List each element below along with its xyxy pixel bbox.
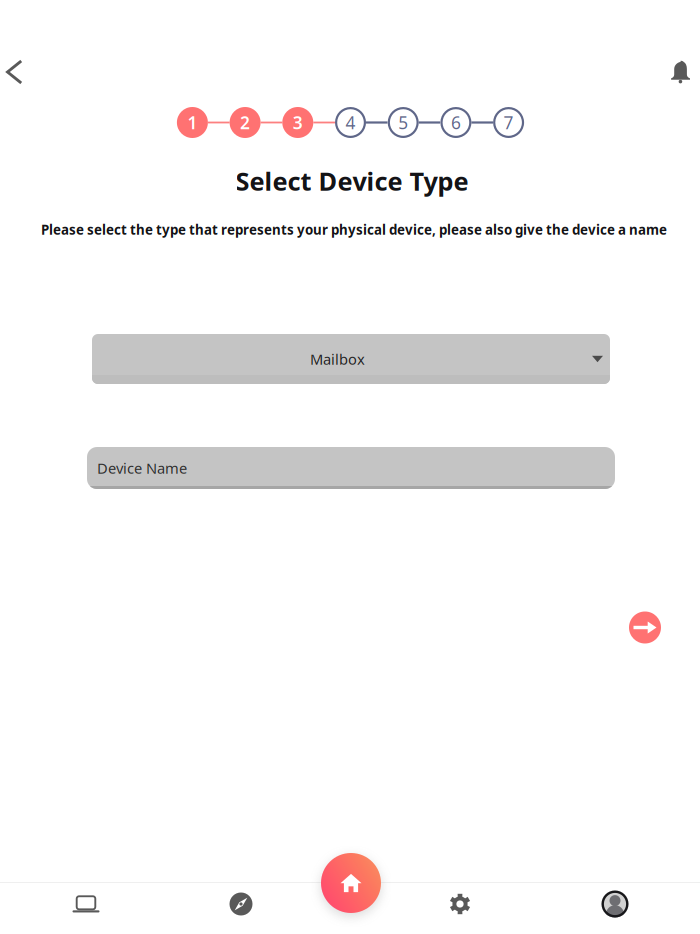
button[interactable]: Explore	[197, 879, 285, 929]
staticText: 5	[398, 111, 408, 134]
staticText: Please select the type that represents y…	[41, 221, 667, 238]
staticText: 1	[187, 111, 197, 134]
staticText: Select Device Type	[235, 164, 468, 198]
staticText: 2	[240, 111, 250, 134]
button[interactable]: Back	[0, 48, 46, 96]
button[interactable]: Devices	[42, 879, 130, 929]
staticText: Device Name	[97, 458, 187, 478]
button[interactable]: Device Name	[87, 447, 615, 489]
staticText: 3	[293, 111, 303, 134]
staticText: Mailbox	[310, 349, 365, 369]
button[interactable]: Mailbox	[92, 334, 610, 384]
button[interactable]: Next	[623, 605, 667, 649]
button[interactable]: Notifications	[652, 48, 700, 96]
button[interactable]: Settings	[416, 879, 504, 929]
staticText: 7	[504, 111, 514, 134]
button[interactable]: Home	[319, 851, 383, 915]
staticText: 4	[345, 111, 355, 134]
staticText: 6	[451, 111, 461, 134]
button[interactable]: Profile	[571, 879, 659, 929]
